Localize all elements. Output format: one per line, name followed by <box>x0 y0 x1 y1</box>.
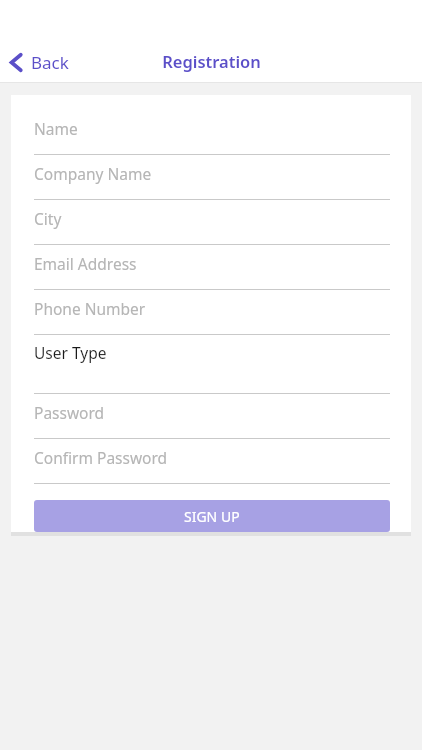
button[interactable]: Phone Number <box>34 290 390 335</box>
staticText: Back <box>31 51 69 74</box>
other: Back <box>8 52 24 73</box>
staticText: Password <box>34 402 105 423</box>
button[interactable]: Password <box>34 394 390 439</box>
staticText: Name <box>34 118 78 139</box>
button[interactable]: User Type <box>34 335 390 394</box>
staticText: Phone Number <box>34 298 146 319</box>
staticText: Email Address <box>34 253 137 274</box>
button[interactable]: SIGN UP <box>34 500 390 532</box>
button[interactable]: Email Address <box>34 245 390 290</box>
staticText: Company Name <box>34 163 152 184</box>
staticText: City <box>34 208 62 229</box>
staticText: SIGN UP <box>184 507 240 526</box>
button[interactable]: Name <box>34 110 390 155</box>
button[interactable]: City <box>34 200 390 245</box>
button[interactable]: Back <box>4 47 73 78</box>
staticText: Confirm Password <box>34 447 168 468</box>
button[interactable]: Company Name <box>34 155 390 200</box>
button[interactable]: Confirm Password <box>34 439 390 484</box>
staticText: Registration <box>162 50 261 72</box>
staticText: User Type <box>34 342 107 363</box>
